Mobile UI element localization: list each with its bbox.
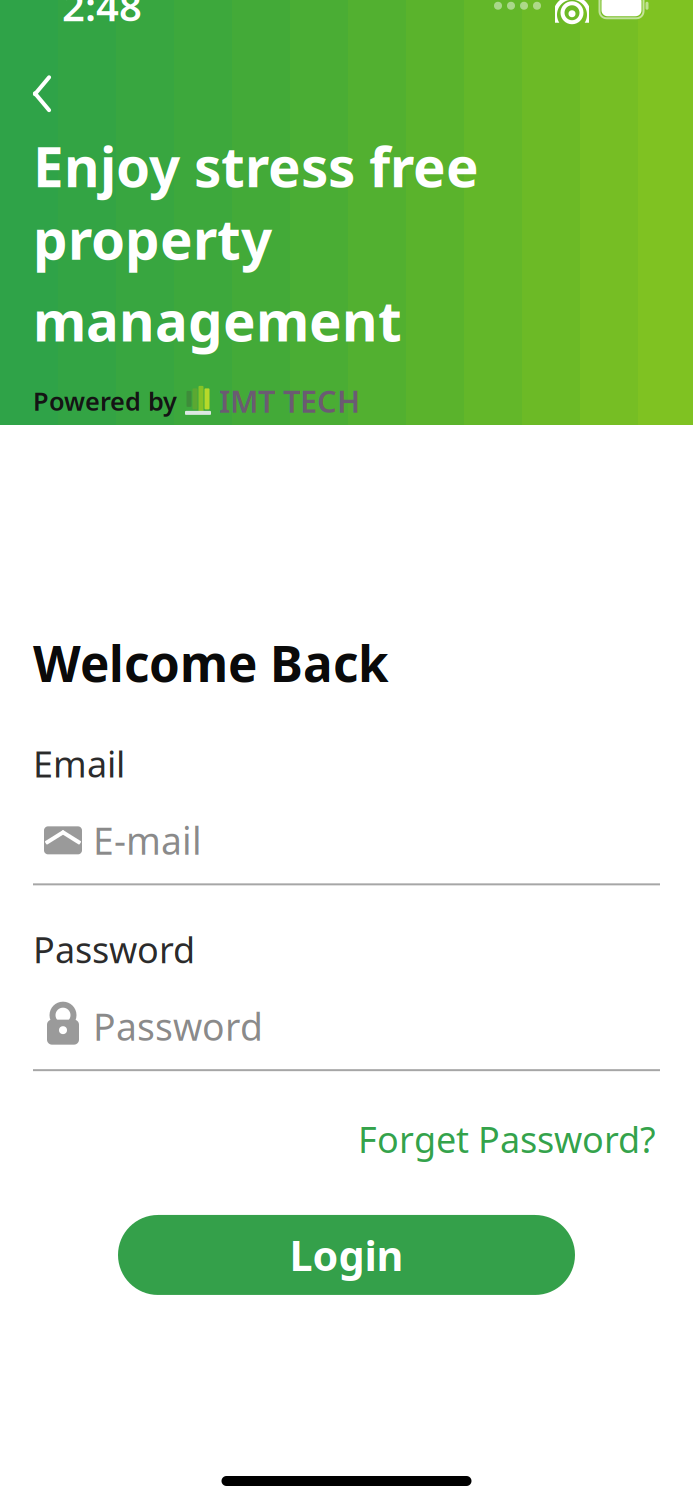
staticText: Email — [33, 739, 125, 787]
staticText: IMT TECH — [219, 380, 360, 421]
button[interactable]: Forget Password? — [354, 1107, 660, 1171]
button[interactable]: Back — [14, 66, 70, 122]
staticText: Login — [289, 1227, 403, 1282]
staticText: Welcome Back — [33, 630, 389, 695]
button[interactable]: Login — [118, 1215, 575, 1295]
staticText: Powered by — [33, 384, 177, 418]
staticText: Enjoy stress free property — [33, 130, 479, 275]
staticText: Password — [33, 925, 195, 973]
staticText: management — [33, 284, 402, 356]
staticText: E-mail — [93, 816, 202, 865]
staticText: Password — [93, 1001, 263, 1051]
staticText: 2:48 — [62, 0, 142, 32]
staticText: Forget Password? — [358, 1115, 656, 1163]
